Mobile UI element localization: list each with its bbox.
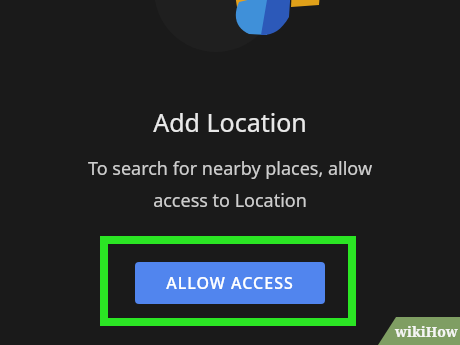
staticText: Add Location: [0, 105, 460, 139]
staticText: wikiHow: [395, 322, 458, 341]
staticText: To search for nearby places, allow acces…: [0, 156, 460, 212]
button[interactable]: ALLOW ACCESS: [135, 262, 325, 304]
staticText: ALLOW ACCESS: [166, 272, 294, 294]
